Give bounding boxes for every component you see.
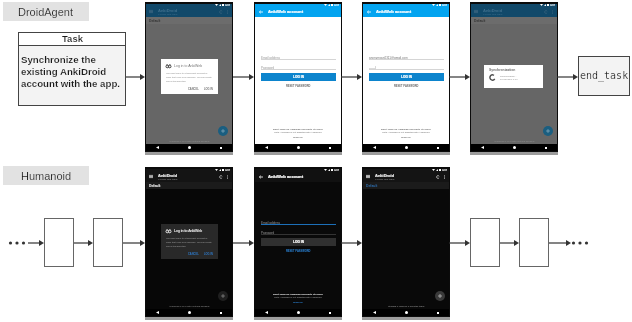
button[interactable]: RESET PASSWORD xyxy=(286,250,311,253)
staticText: 0 cards due today xyxy=(158,178,178,181)
button[interactable]: Default xyxy=(471,17,557,24)
button[interactable] xyxy=(470,218,500,267)
other: Home xyxy=(513,146,516,149)
staticText: 4:01 xyxy=(442,4,448,6)
button[interactable] xyxy=(44,218,74,267)
staticText: Email address xyxy=(261,221,281,224)
button[interactable]: LOG IN xyxy=(204,253,213,256)
staticText: LOG IN xyxy=(293,240,304,244)
button[interactable]: Sync xyxy=(436,175,440,179)
button[interactable]: Add deck xyxy=(218,126,228,136)
staticText: AnkiWeb account xyxy=(268,174,304,179)
staticText: Task xyxy=(62,33,83,44)
button[interactable]: More options xyxy=(443,175,446,179)
staticText: Humanoid xyxy=(21,170,72,182)
staticText: Password xyxy=(261,66,275,69)
other: Back xyxy=(265,311,268,314)
button[interactable]: Sync xyxy=(219,10,223,14)
staticText: Email address xyxy=(261,56,281,59)
staticText: AnkiDroid xyxy=(483,8,503,12)
staticText: DroidAgent xyxy=(18,6,74,18)
button[interactable]: Sync xyxy=(544,10,548,14)
button[interactable]: CANCEL xyxy=(188,88,199,91)
button[interactable]: SIGN UP xyxy=(293,136,303,139)
button[interactable]: Back xyxy=(259,10,263,14)
other: Home xyxy=(188,311,191,314)
button[interactable]: LOG IN xyxy=(261,73,336,81)
staticText: RESET PASSWORD xyxy=(286,250,311,253)
button[interactable]: LOG IN xyxy=(369,73,444,81)
button[interactable] xyxy=(519,218,549,267)
other: Home xyxy=(405,311,408,314)
other: Home xyxy=(297,146,300,149)
button[interactable]: More options xyxy=(226,175,229,179)
other: Home xyxy=(188,146,191,149)
button[interactable]: Add deck xyxy=(435,291,445,301)
button[interactable]: LOG IN xyxy=(261,238,336,246)
other: Home xyxy=(297,311,300,314)
button[interactable]: Task xyxy=(18,32,126,106)
button[interactable]: Back xyxy=(367,10,371,14)
button[interactable]: RESET PASSWORD xyxy=(286,85,311,88)
button[interactable]: Default xyxy=(146,17,232,24)
button[interactable]: LOG IN xyxy=(204,88,213,91)
button[interactable]: More options xyxy=(226,10,229,14)
button[interactable]: SIGN UP xyxy=(293,301,303,304)
staticText: You must log in to a third-party account… xyxy=(166,237,212,248)
staticText: 0 cards due today xyxy=(375,178,395,181)
staticText: Synchronize the existing AnkiDroid accou… xyxy=(21,54,121,89)
staticText: Log in to AnkiWeb xyxy=(174,229,203,233)
staticText: Note: AnkiWeb is not affiliated with Ank… xyxy=(382,131,430,134)
staticText: 4:01 xyxy=(550,4,556,6)
button[interactable]: RESET PASSWORD xyxy=(394,85,419,88)
button[interactable]: Add deck xyxy=(543,126,553,136)
button[interactable]: Open navigation drawer xyxy=(366,175,370,178)
button[interactable]: Add deck xyxy=(218,291,228,301)
staticText: LOG IN xyxy=(293,75,304,79)
button[interactable] xyxy=(93,218,123,267)
staticText: Downloading... xyxy=(500,75,517,78)
staticText: 4:01 xyxy=(225,4,231,6)
staticText: AnkiDroid xyxy=(375,173,395,177)
button[interactable]: Default xyxy=(363,182,449,189)
other: Back xyxy=(156,311,159,314)
staticText: Default xyxy=(366,184,378,188)
other: Back xyxy=(373,311,376,314)
staticText: Note: AnkiWeb is not affiliated with Ank… xyxy=(274,296,322,299)
staticText: AnkiDroid xyxy=(158,173,178,177)
button[interactable]: SIGN UP xyxy=(401,136,411,139)
button[interactable]: Sync xyxy=(219,175,223,179)
staticText: AnkiDroid 2.15.6 with nothing pending xyxy=(169,140,210,143)
staticText: RESET PASSWORD xyxy=(286,85,311,88)
staticText: 4:01 xyxy=(225,169,231,171)
staticText: SIGN UP xyxy=(293,301,303,304)
staticText: You must log in to a third-party account… xyxy=(166,72,212,83)
staticText: SIGN UP xyxy=(293,136,303,139)
button[interactable]: CANCEL xyxy=(188,253,199,256)
staticText: Note: AnkiWeb is not affiliated with Ank… xyxy=(274,131,322,134)
staticText: Synchronization xyxy=(489,68,516,72)
staticText: LOG IN xyxy=(204,88,213,91)
button[interactable]: end_task xyxy=(578,56,630,96)
button[interactable]: Open navigation drawer xyxy=(149,175,153,178)
button[interactable]: More options xyxy=(551,10,554,14)
staticText: anonymous0311@gmail.com xyxy=(369,56,408,59)
button[interactable]: Default xyxy=(146,182,232,189)
staticText: CANCEL xyxy=(188,253,199,256)
other: Back xyxy=(373,146,376,149)
staticText: LOG IN xyxy=(401,75,412,79)
other: Home xyxy=(405,146,408,149)
staticText: 0 cards due today xyxy=(158,13,178,16)
staticText: end_task xyxy=(580,70,629,82)
staticText: Don't have an AnkiWeb account? It's free… xyxy=(273,128,323,131)
staticText: AnkiDroid xyxy=(158,8,178,12)
button[interactable]: Back xyxy=(259,175,263,179)
staticText: AnkiDroid 2.15.6 with nothing pending xyxy=(494,140,535,143)
